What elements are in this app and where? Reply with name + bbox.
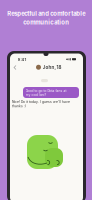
staticText: Good to go to Dota fans at my cool bro? xyxy=(25,89,66,97)
staticText: 9:41 xyxy=(17,57,26,62)
staticText: John, 18 xyxy=(42,64,61,70)
staticText: Respectful and comfortable communication xyxy=(7,10,85,26)
button[interactable]: Back xyxy=(13,64,17,70)
staticText: Nice! Do it today. I guess we'll have th… xyxy=(12,100,70,108)
